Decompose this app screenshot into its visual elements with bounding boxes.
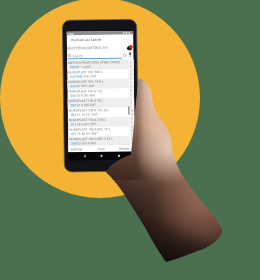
button[interactable] [0, 0, 260, 280]
